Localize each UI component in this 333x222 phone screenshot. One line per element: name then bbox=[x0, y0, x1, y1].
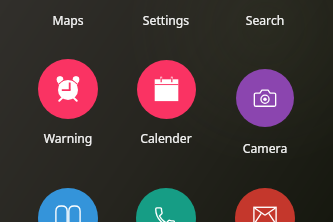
staticText: Search bbox=[210, 12, 320, 29]
button[interactable]: Warning bbox=[13, 130, 123, 147]
button[interactable]: Search bbox=[210, 12, 320, 29]
button[interactable]: Books bbox=[38, 188, 98, 222]
staticText: Camera bbox=[210, 140, 320, 157]
button[interactable]: Mail bbox=[235, 188, 295, 222]
button[interactable]: Camera bbox=[236, 69, 294, 127]
staticText: Settings bbox=[111, 12, 221, 29]
staticText: Maps bbox=[13, 12, 123, 29]
button[interactable]: Calender bbox=[137, 60, 196, 119]
button[interactable]: Camera bbox=[210, 140, 320, 157]
staticText: Calender bbox=[111, 130, 221, 147]
button[interactable]: Warning bbox=[38, 59, 98, 119]
button[interactable]: Maps bbox=[13, 12, 123, 29]
button[interactable]: Settings bbox=[111, 12, 221, 29]
button[interactable]: Calender bbox=[111, 130, 221, 147]
button[interactable]: Phone bbox=[136, 188, 196, 222]
staticText: Warning bbox=[13, 130, 123, 147]
